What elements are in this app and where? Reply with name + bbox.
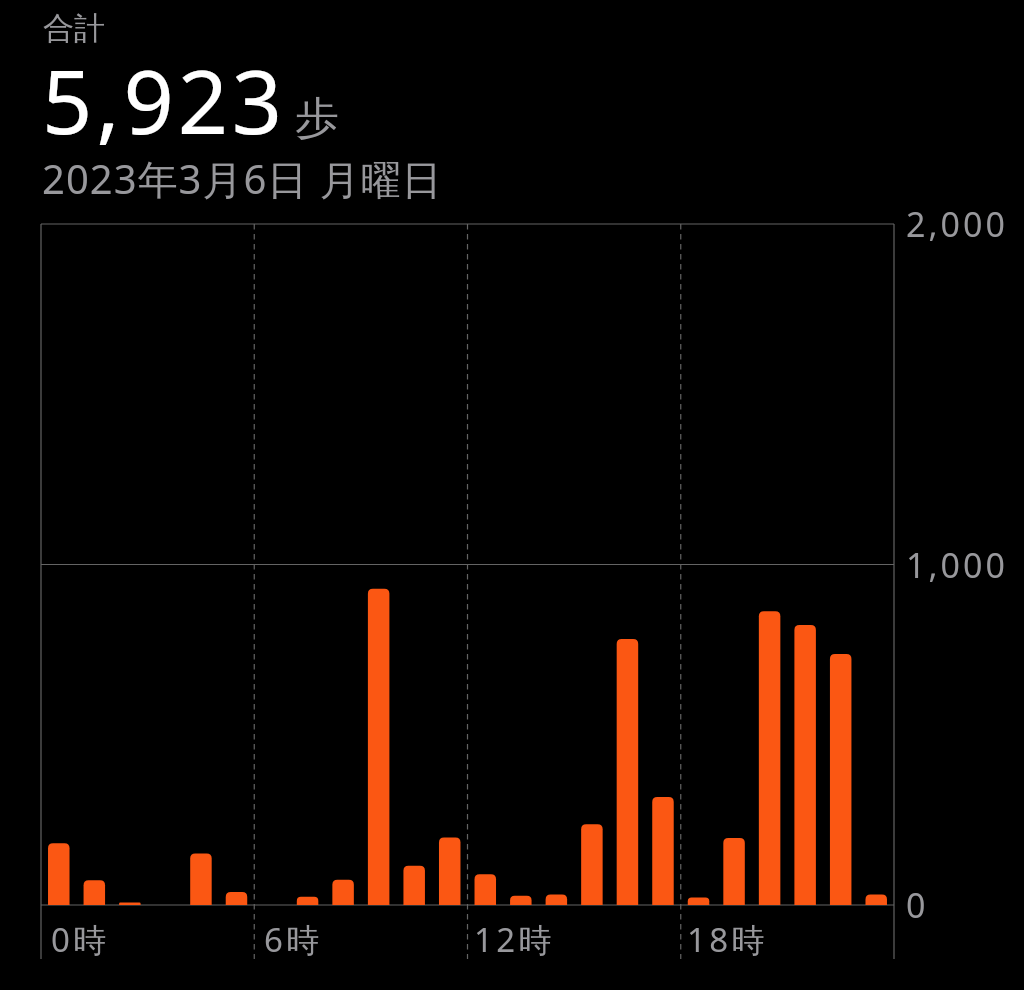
staticText: 2023年3月6日 月曜日	[42, 151, 443, 206]
staticText: 1,000	[906, 542, 1008, 588]
staticText: 2,000	[906, 201, 1008, 247]
staticText: 歩	[295, 91, 339, 146]
staticText: 0	[906, 882, 929, 928]
staticText: 6時	[264, 917, 323, 962]
staticText: 合計	[43, 9, 105, 48]
button[interactable]: 合計	[0, 0, 1024, 205]
staticText: 0時	[51, 917, 110, 962]
staticText: 5,923	[42, 40, 286, 160]
button[interactable]: Hourly step chart	[0, 205, 1024, 990]
staticText: 12時	[474, 917, 555, 962]
staticText: 18時	[687, 917, 768, 962]
